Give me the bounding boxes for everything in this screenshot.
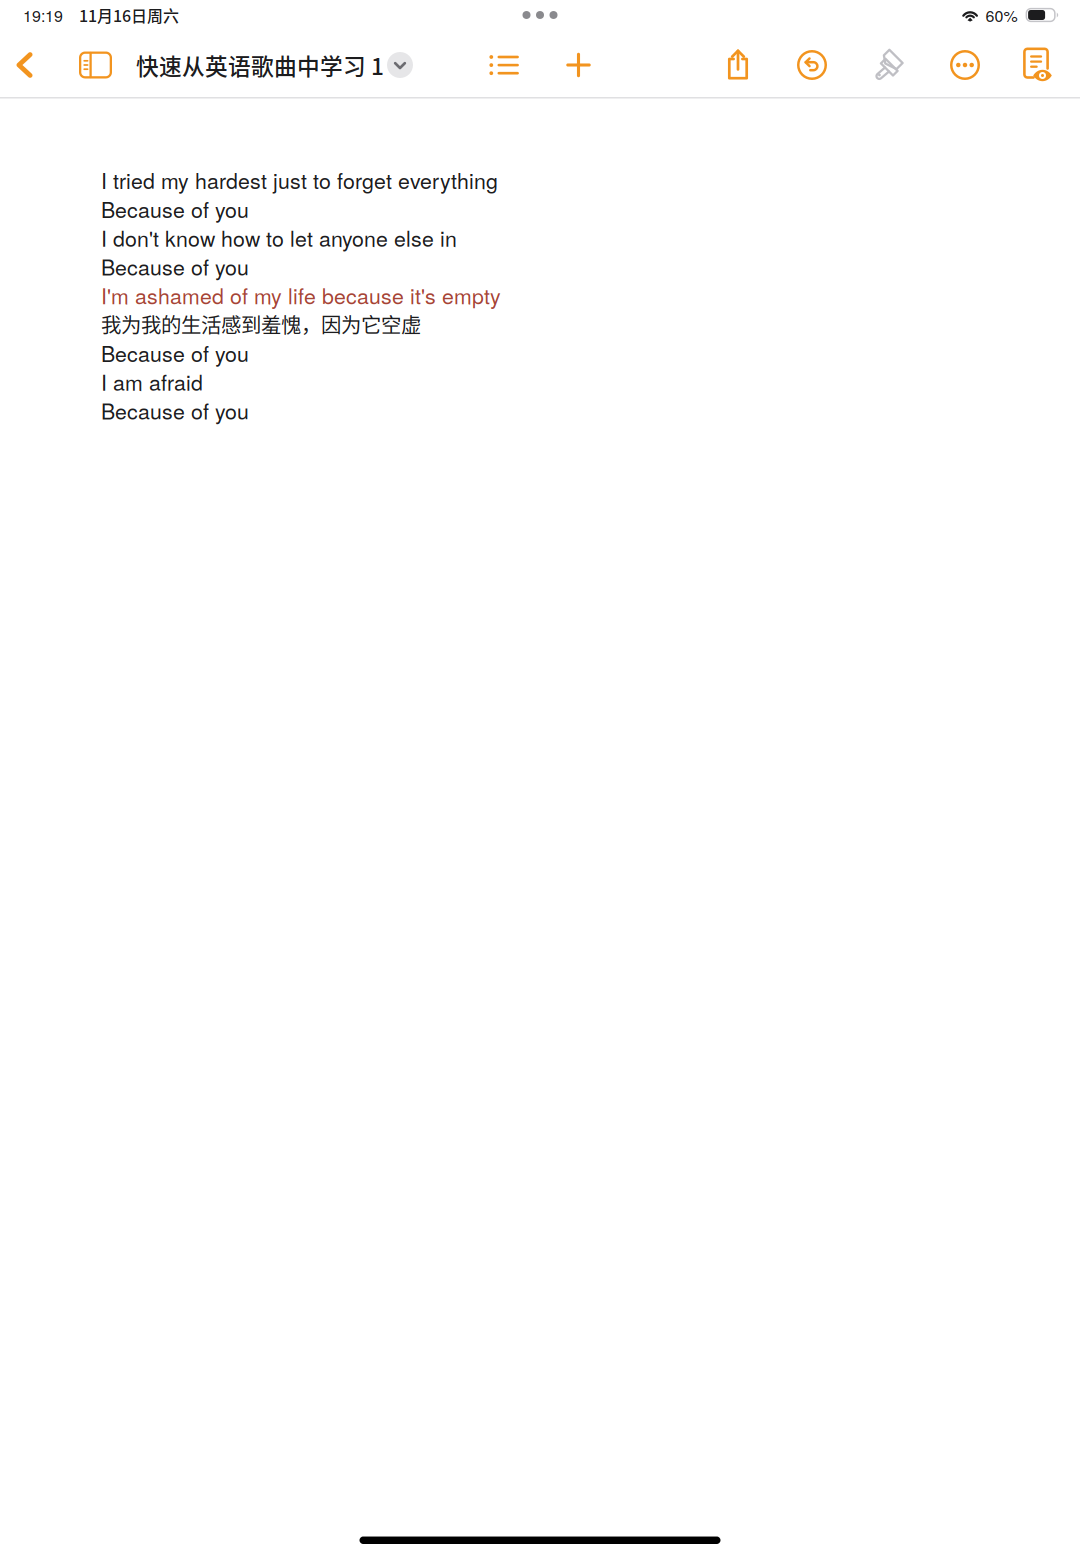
button[interactable]: Markup: [860, 36, 918, 94]
button[interactable]: Checklist: [474, 36, 533, 94]
staticText: 19:19: [23, 3, 63, 26]
button[interactable]: Insert: [550, 37, 607, 92]
button[interactable]: Preview: [1010, 36, 1066, 93]
staticText: I am afraid: [101, 366, 203, 397]
staticText: Because of you: [101, 395, 249, 425]
button[interactable]: Show sidebar: [70, 35, 121, 94]
staticText: Because of you: [101, 337, 249, 368]
staticText: 我为我的生活感到羞愧，因为它空虚: [101, 309, 421, 339]
button[interactable]: More: [936, 36, 994, 94]
staticText: Because of you: [101, 193, 249, 224]
staticText: I tried my hardest just to forget everyt…: [101, 165, 498, 195]
staticText: 60%: [986, 3, 1018, 26]
staticText: I don't know how to let anyone else in: [101, 222, 457, 253]
staticText: I'm ashamed of my life because it's empt…: [101, 280, 501, 310]
staticText: 快速从英语歌曲中学习 1: [136, 49, 384, 81]
staticText: 11月16日周六: [79, 3, 179, 27]
button[interactable]: Back: [0, 35, 49, 95]
button[interactable]: 快速从英语歌曲中学习 1: [136, 37, 413, 93]
staticText: Because of you: [101, 251, 249, 281]
button[interactable]: Share: [710, 37, 766, 93]
button[interactable]: Undo: [783, 36, 841, 94]
